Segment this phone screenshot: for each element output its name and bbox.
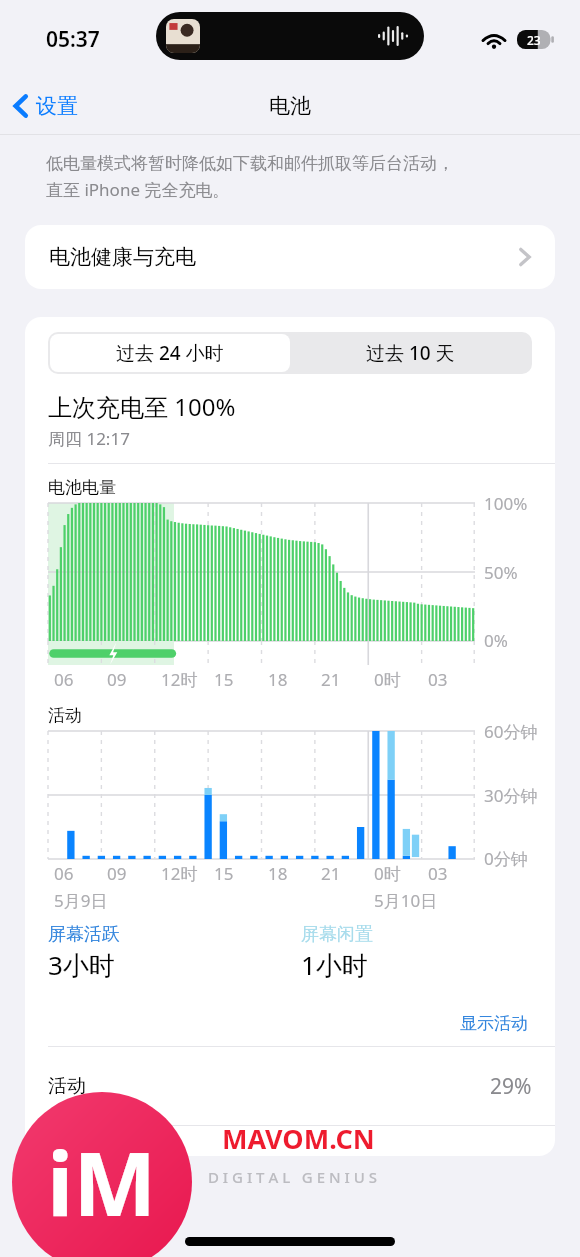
staticText: 100% [484,492,528,515]
button[interactable]: 过去 10 天 [290,334,530,372]
staticText: 50% [484,561,518,584]
staticText: 60分钟 [484,720,538,743]
staticText: 15 [214,668,234,691]
staticText: 显示活动 [460,1013,528,1034]
staticText: 03 [428,862,448,885]
staticText: 12时 [161,668,198,691]
staticText: 低电量模式将暂时降低如下载和邮件抓取等后台活动， 直至 iPhone 完全充电。 [46,153,454,201]
staticText: D I G I T A L G E N I U S [208,1167,377,1187]
staticText: iM [47,1122,157,1242]
staticText: 3小时 [48,947,115,983]
staticText: 18 [268,668,288,691]
button[interactable]: 活动 [25,1047,555,1125]
staticText: 屏幕闲置 [301,923,373,946]
staticText: 0时 [374,862,401,885]
staticText: 29% [490,1072,532,1101]
staticText: 03 [428,668,448,691]
button[interactable]: 显示活动 [456,1009,532,1038]
staticText: 过去 10 天 [366,340,455,366]
staticText: 0时 [374,668,401,691]
staticText: 23 [527,32,541,48]
staticText: 21 [321,862,341,885]
staticText: 设置 [36,93,78,119]
button[interactable]: 过去 24 小时 [50,334,290,372]
staticText: 电池健康与充电 [49,244,196,270]
staticText: 12时 [161,862,198,885]
staticText: 屏幕活跃 [48,923,120,946]
staticText: 09 [107,668,127,691]
staticText: 5月9日 [54,889,108,912]
staticText: 06 [54,668,74,691]
button[interactable]: 返回 [0,87,88,125]
staticText: MAVOM.CN [222,1120,375,1157]
staticText: 15 [214,862,234,885]
other: 返回 [14,94,28,118]
staticText: 上次充电至 100% [48,390,236,423]
button[interactable]: 电池健康与充电 [25,225,555,289]
staticText: 电池电量 [48,477,116,498]
staticText: 06 [54,862,74,885]
staticText: 21 [321,668,341,691]
staticText: 过去 24 小时 [116,340,224,366]
staticText: 1小时 [301,947,368,983]
staticText: 09 [107,862,127,885]
staticText: 30分钟 [484,784,538,807]
staticText: 0分钟 [484,847,528,870]
staticText: 0% [484,629,508,652]
staticText: 5月10日 [374,889,438,912]
staticText: 05:37 [46,25,100,54]
staticText: 电池 [269,93,311,119]
staticText: 18 [268,862,288,885]
staticText: 周四 12:17 [48,427,130,450]
staticText: 活动 [48,705,82,726]
staticText: 活动 [48,1074,86,1098]
